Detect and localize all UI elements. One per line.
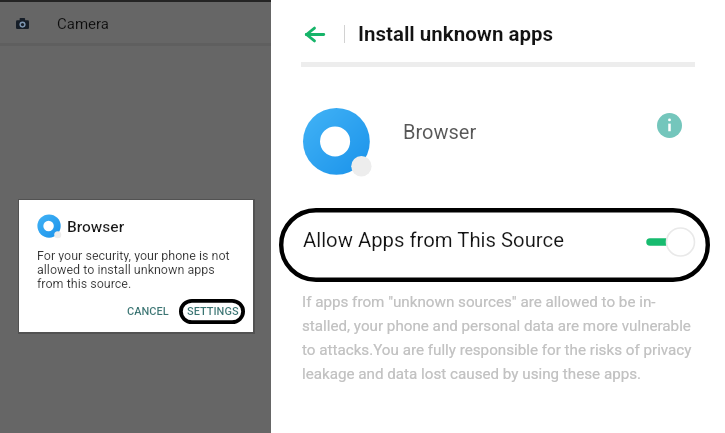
staticText: from this source. — [37, 276, 132, 290]
staticText: For your security, your phone is not — [37, 248, 230, 262]
button[interactable]: CANCEL — [116, 298, 180, 324]
staticText: Install unknown apps — [358, 22, 554, 46]
button[interactable]: SETTINGS — [179, 298, 247, 324]
staticText: Browser — [67, 218, 125, 236]
button[interactable]: Info — [657, 113, 682, 138]
staticText: leakage and data lost caused by using th… — [302, 365, 642, 383]
staticText: to attacks.You are fully responsible for… — [302, 341, 692, 359]
staticText: SETTINGS — [187, 305, 239, 318]
staticText: Camera — [57, 15, 109, 33]
button[interactable]: Camera — [0, 3, 271, 44]
staticText: stalled, your phone and personal data ar… — [302, 317, 691, 335]
staticText: CANCEL — [127, 305, 169, 318]
button[interactable] — [279, 208, 710, 282]
staticText: allowed to install unknown apps — [37, 262, 215, 276]
button[interactable] — [271, 100, 725, 185]
button[interactable]: Back — [299, 19, 329, 49]
staticText: Browser — [403, 120, 477, 143]
staticText: If apps from "unknown sources" are allow… — [302, 293, 656, 311]
staticText: Allow Apps from This Source — [303, 228, 564, 252]
